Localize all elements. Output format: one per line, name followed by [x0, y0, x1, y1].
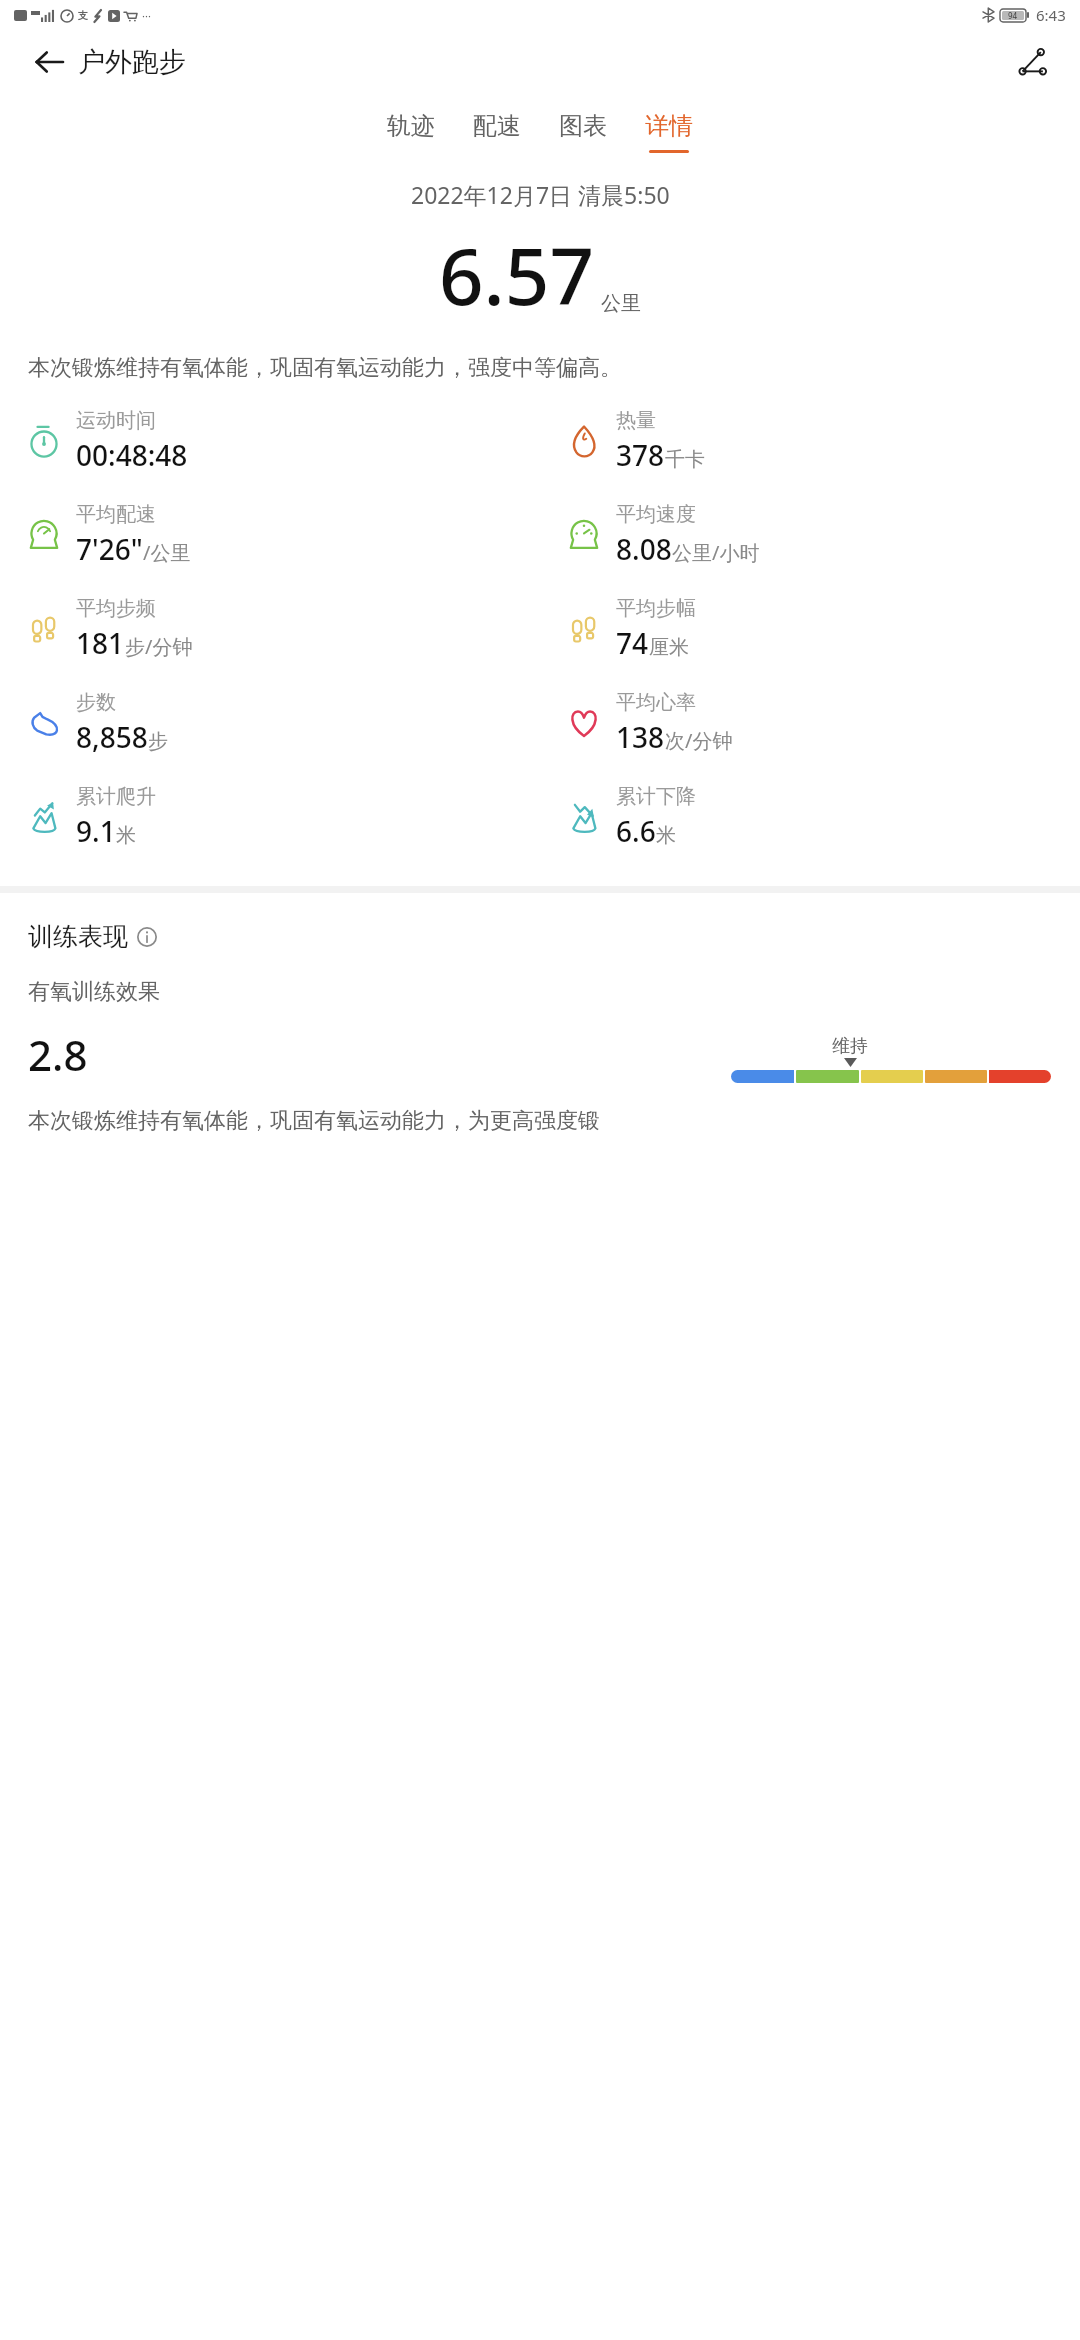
staticText: 7'26" — [76, 530, 143, 568]
staticText: 6:43 — [1036, 5, 1066, 25]
button[interactable]: 平均配速 — [0, 502, 540, 568]
staticText: 2022年12月7日 清晨5:50 — [411, 179, 670, 210]
button[interactable]: 配速 — [454, 107, 540, 157]
staticText: 181 — [76, 624, 125, 662]
staticText: 2.8 — [28, 1026, 88, 1083]
staticText: 累计爬升 — [76, 784, 156, 809]
staticText: 平均速度 — [616, 502, 696, 527]
staticText: 公里 — [601, 291, 641, 316]
staticText: 6.6 — [616, 812, 656, 850]
button[interactable]: 平均速度 — [540, 502, 1080, 568]
staticText: ··· — [142, 8, 151, 23]
staticText: 详情 — [645, 111, 693, 141]
button[interactable]: 步数 — [0, 690, 540, 756]
staticText: 户外跑步 — [78, 45, 186, 79]
staticText: 热量 — [616, 408, 656, 433]
button[interactable]: 累计下降 — [540, 784, 1080, 850]
staticText: 公里/小时 — [672, 539, 760, 566]
staticText: 94 — [1008, 10, 1018, 21]
staticText: 次/分钟 — [665, 727, 733, 754]
staticText: 74 — [616, 624, 649, 662]
staticText: 米 — [656, 823, 676, 848]
staticText: 平均配速 — [76, 502, 156, 527]
staticText: 步/分钟 — [125, 633, 193, 660]
staticText: 平均步频 — [76, 596, 156, 621]
staticText: 步 — [148, 729, 168, 754]
button[interactable]: Back — [26, 39, 72, 85]
staticText: 配速 — [473, 111, 521, 141]
staticText: 平均步幅 — [616, 596, 696, 621]
button[interactable]: 平均步幅 — [540, 596, 1080, 662]
button[interactable]: 平均心率 — [540, 690, 1080, 756]
staticText: 138 — [616, 718, 665, 756]
button[interactable]: 平均步频 — [0, 596, 540, 662]
staticText: 本次锻炼维持有氧体能，巩固有氧运动能力，为更高强度锻 — [28, 1107, 600, 1135]
staticText: 运动时间 — [76, 408, 156, 433]
staticText: 本次锻炼维持有氧体能，巩固有氧运动能力，强度中等偏高。 — [28, 354, 1052, 382]
staticText: 米 — [116, 823, 136, 848]
staticText: 00:48:48 — [76, 436, 188, 474]
staticText: 6.57 — [439, 222, 595, 328]
staticText: /公里 — [143, 539, 191, 566]
button[interactable]: 详情 — [626, 107, 712, 157]
staticText: 维持 — [832, 1035, 868, 1058]
other: Info — [137, 927, 157, 947]
staticText: 千卡 — [665, 447, 705, 472]
staticText: 厘米 — [649, 635, 689, 660]
button[interactable]: 训练表现 — [28, 921, 157, 952]
button[interactable]: 累计爬升 — [0, 784, 540, 850]
button[interactable]: 轨迹 — [368, 107, 454, 157]
button[interactable]: 运动时间 — [0, 408, 540, 474]
staticText: 步数 — [76, 690, 116, 715]
staticText: 图表 — [559, 111, 607, 141]
staticText: 378 — [616, 436, 665, 474]
button[interactable]: 图表 — [540, 107, 626, 157]
staticText: 8.08 — [616, 530, 672, 568]
staticText: 有氧训练效果 — [28, 978, 160, 1006]
staticText: 轨迹 — [387, 111, 435, 141]
staticText: 累计下降 — [616, 784, 696, 809]
staticText: 训练表现 — [28, 921, 128, 952]
button[interactable]: Share — [1010, 39, 1056, 85]
staticText: 9.1 — [76, 812, 116, 850]
button[interactable]: 热量 — [540, 408, 1080, 474]
staticText: 支 — [78, 9, 88, 22]
staticText: 8,858 — [76, 718, 148, 756]
staticText: 平均心率 — [616, 690, 696, 715]
